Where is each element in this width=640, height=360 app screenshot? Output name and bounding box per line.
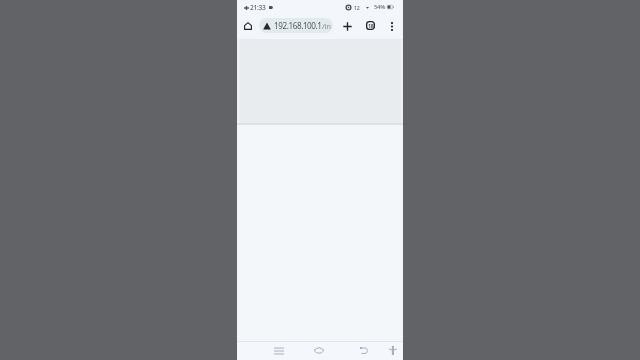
button[interactable]: Home	[310, 341, 328, 359]
button[interactable]: Recents	[270, 341, 288, 359]
button[interactable]: New tab	[339, 18, 355, 34]
button[interactable]: Hide keyboard	[384, 341, 402, 359]
button[interactable]: 192.168.100.1	[259, 18, 333, 33]
staticText: 54%	[374, 3, 385, 11]
staticText: 18	[368, 22, 374, 29]
button[interactable]: More options	[384, 18, 400, 34]
staticText: 21:33	[250, 3, 266, 12]
staticText: 192.168.100.1	[274, 20, 322, 31]
button[interactable]: Back	[355, 341, 373, 359]
staticText: 12	[354, 4, 360, 11]
button[interactable]: Tabs	[362, 17, 378, 33]
button[interactable]: Home	[240, 18, 256, 34]
staticText: /in	[322, 21, 331, 31]
